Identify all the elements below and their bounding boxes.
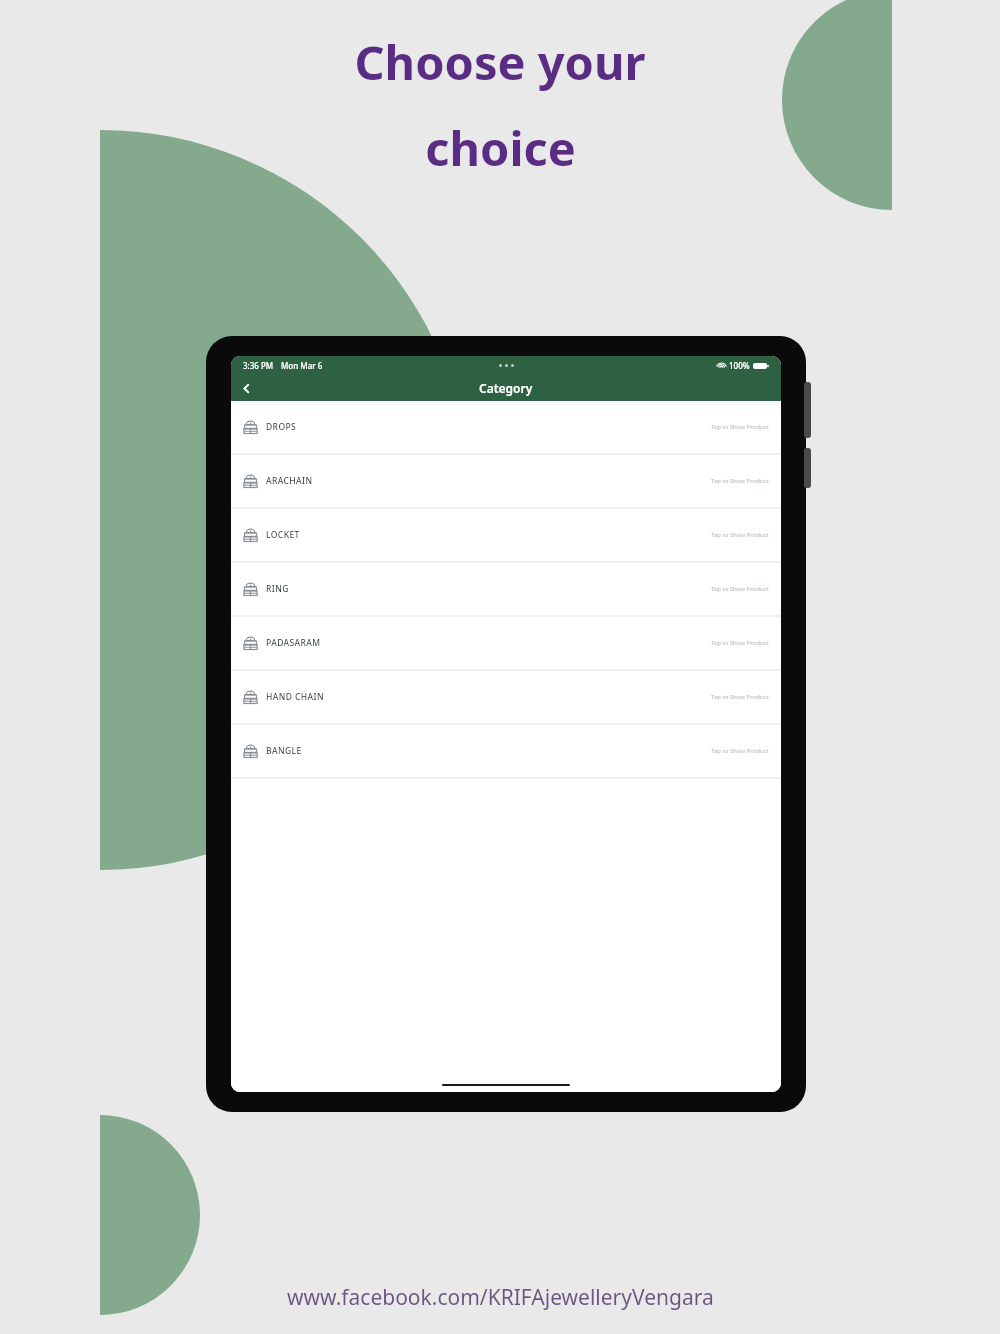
- button[interactable]: RING: [231, 563, 781, 615]
- staticText: Choose your: [354, 30, 646, 94]
- staticText: BANGLE: [266, 745, 302, 757]
- button[interactable]: PADASARAM: [231, 617, 781, 669]
- staticText: Tap to Show Product: [711, 639, 769, 647]
- staticText: 3:36 PM: [243, 360, 274, 371]
- button[interactable]: Back: [235, 377, 257, 399]
- staticText: Tap to Show Product: [711, 477, 769, 485]
- staticText: RING: [266, 583, 289, 595]
- staticText: Tap to Show Product: [711, 693, 769, 701]
- staticText: Mon Mar 6: [281, 360, 323, 371]
- staticText: Tap to Show Product: [711, 585, 769, 593]
- button[interactable]: ARACHAIN: [231, 455, 781, 507]
- button[interactable]: HAND CHAIN: [231, 671, 781, 723]
- staticText: choice: [425, 116, 576, 180]
- button[interactable]: BANGLE: [231, 725, 781, 777]
- button[interactable]: DROPS: [231, 401, 781, 453]
- staticText: Tap to Show Product: [711, 423, 769, 431]
- staticText: Tap to Show Product: [711, 531, 769, 539]
- staticText: LOCKET: [266, 529, 300, 541]
- staticText: 100%: [729, 360, 750, 371]
- staticText: DROPS: [266, 421, 297, 433]
- staticText: www.facebook.com/KRIFAjewelleryVengara: [287, 1283, 714, 1312]
- staticText: Category: [479, 380, 533, 396]
- staticText: HAND CHAIN: [266, 691, 324, 703]
- staticText: PADASARAM: [266, 637, 321, 649]
- button[interactable]: LOCKET: [231, 509, 781, 561]
- staticText: ARACHAIN: [266, 475, 313, 487]
- staticText: Tap to Show Product: [711, 747, 769, 755]
